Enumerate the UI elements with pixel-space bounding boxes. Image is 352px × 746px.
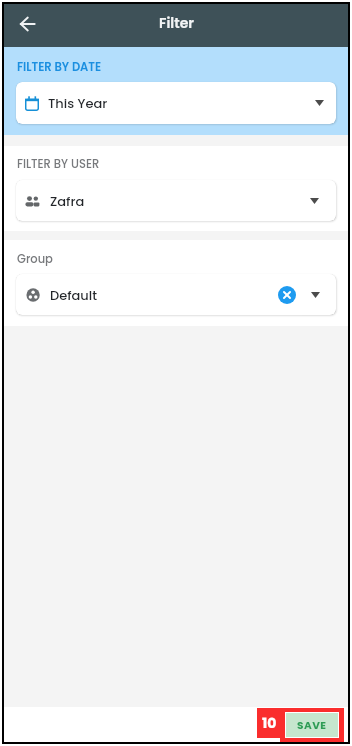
button[interactable]: This Year	[16, 82, 336, 124]
staticText: FILTER BY DATE	[17, 59, 102, 75]
staticText: This Year	[48, 94, 108, 112]
button[interactable]: Back	[8, 5, 46, 43]
staticText: Group	[17, 251, 53, 267]
button[interactable]: Clear group	[278, 286, 296, 304]
button[interactable]: Zafra	[16, 180, 336, 221]
staticText: Default	[50, 286, 98, 304]
staticText: FILTER BY USER	[17, 156, 100, 172]
staticText: 10	[262, 713, 277, 733]
button[interactable]: Default	[16, 274, 336, 315]
button[interactable]: SAVE	[286, 713, 338, 737]
staticText: SAVE	[297, 718, 327, 733]
staticText: Zafra	[50, 192, 85, 210]
staticText: Filter	[159, 13, 194, 33]
